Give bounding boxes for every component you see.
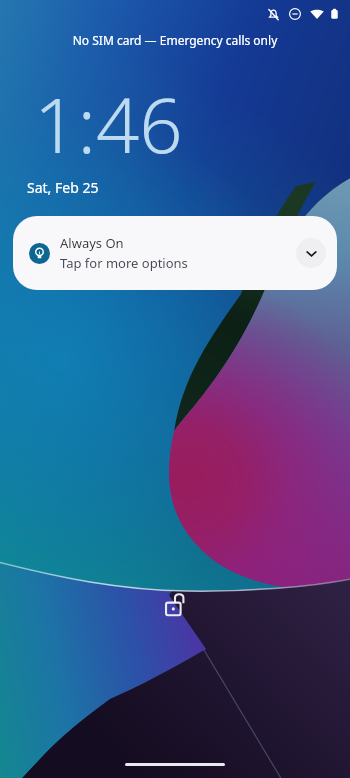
staticText: Always On — [60, 234, 124, 252]
button[interactable]: Expand — [296, 238, 326, 268]
button[interactable]: Always On — [13, 216, 337, 290]
staticText: 1:46 — [34, 72, 183, 176]
staticText: Sat, Feb 25 — [27, 178, 99, 197]
staticText: No SIM card — Emergency calls only — [0, 32, 350, 48]
other: Do not disturb — [289, 8, 301, 20]
other: Wi-Fi — [310, 8, 324, 20]
other: Silent mode — [267, 8, 280, 21]
other: Battery — [330, 7, 339, 21]
staticText: Tap for more options — [60, 254, 188, 272]
